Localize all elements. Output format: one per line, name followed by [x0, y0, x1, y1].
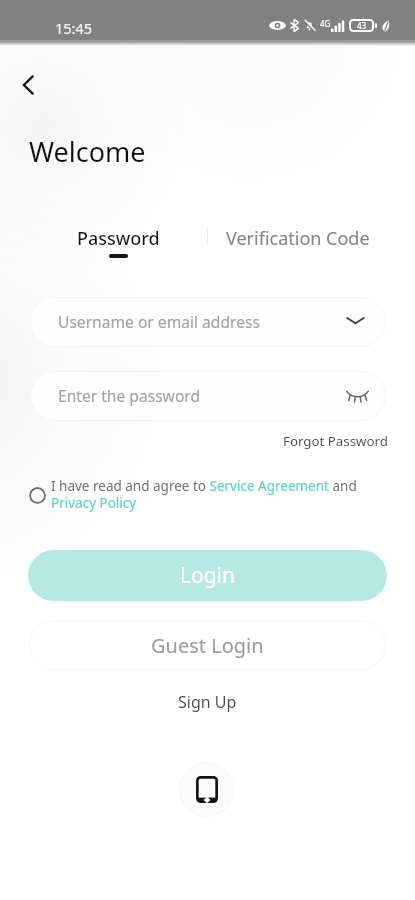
button[interactable]: Username or email address — [30, 297, 386, 347]
staticText: Password — [77, 226, 160, 251]
button[interactable]: Sign Up — [172, 687, 243, 717]
button[interactable]: Password — [58, 220, 178, 262]
button[interactable]: Guest Login — [29, 620, 386, 670]
button[interactable]: Login with device — [179, 762, 234, 817]
button[interactable]: Login — [28, 550, 387, 601]
staticText: I have read and agree to Service Agreeme… — [51, 477, 363, 512]
button[interactable]: Agree to terms — [29, 487, 46, 504]
staticText: Enter the password — [58, 385, 201, 406]
button[interactable]: Forgot Password — [280, 428, 391, 454]
button[interactable]: Show password — [344, 383, 370, 409]
button[interactable]: Show saved accounts — [342, 309, 368, 335]
staticText: 4G — [320, 18, 331, 29]
button[interactable]: Enter the password — [30, 371, 386, 421]
button[interactable]: Back — [5, 62, 51, 108]
staticText: 43 — [357, 20, 367, 31]
staticText: Guest Login — [151, 632, 264, 659]
staticText: Verification Code — [226, 226, 370, 251]
staticText: Login — [180, 561, 236, 590]
staticText: Welcome — [29, 133, 146, 170]
staticText: 15:45 — [55, 18, 93, 38]
button[interactable]: Verification Code — [222, 220, 374, 262]
staticText: Username or email address — [58, 311, 260, 332]
